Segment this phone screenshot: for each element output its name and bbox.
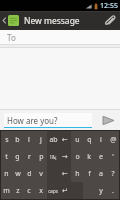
button[interactable]: n (1, 165, 12, 182)
staticText: ← (62, 136, 68, 144)
staticText: ↵ (62, 187, 68, 195)
button[interactable]: Send (96, 110, 120, 130)
button[interactable]: h (71, 165, 83, 182)
staticText: → (62, 153, 68, 161)
button[interactable]: To (0, 30, 120, 44)
button[interactable]: a (95, 165, 107, 182)
button[interactable]: . (107, 182, 119, 199)
button[interactable]: r (23, 148, 35, 165)
staticText: h (75, 169, 80, 179)
button[interactable]: w (12, 165, 23, 182)
staticText: ← (62, 170, 68, 178)
staticText: caps (48, 188, 58, 194)
button[interactable]: ↵ (59, 182, 71, 199)
staticText: To (7, 32, 16, 43)
staticText: d (27, 169, 32, 179)
staticText: @ (110, 135, 117, 145)
button[interactable]: x (35, 182, 47, 199)
staticText: ' (112, 152, 114, 162)
button[interactable]: 1&¡ (47, 148, 59, 165)
staticText: . (112, 186, 114, 196)
button[interactable]: d (23, 165, 35, 182)
button[interactable]: y (95, 182, 107, 199)
button[interactable]: q (83, 131, 95, 148)
staticText: l (28, 135, 30, 145)
button[interactable]: g (12, 148, 23, 165)
staticText: y (99, 186, 103, 196)
staticText: k (87, 152, 91, 162)
staticText: t (5, 152, 8, 162)
button[interactable]: caps (47, 182, 59, 199)
staticText: How are you? (7, 115, 58, 126)
button[interactable]: ← (59, 131, 71, 148)
staticText: q (87, 135, 92, 145)
button[interactable]: m (1, 182, 12, 199)
button[interactable]: Navigate up (0, 11, 21, 30)
staticText: g (15, 152, 20, 162)
button[interactable]: ← (59, 165, 71, 182)
button[interactable]: t (1, 148, 12, 165)
staticText: p (39, 152, 44, 162)
button[interactable]: ab (47, 131, 59, 148)
button[interactable]: e (95, 148, 107, 165)
staticText: z (16, 186, 20, 196)
button[interactable]: v (35, 165, 47, 182)
staticText: ab (49, 135, 58, 145)
button[interactable]: i (95, 131, 107, 148)
button[interactable]: s (1, 131, 12, 148)
staticText: i (100, 135, 102, 145)
staticText: s (5, 135, 9, 145)
button[interactable]: u (71, 131, 83, 148)
staticText: x (39, 186, 43, 196)
button[interactable]: l (23, 131, 35, 148)
button[interactable]: f (83, 165, 95, 182)
staticText: m (3, 186, 10, 196)
staticText: 12:55 (100, 1, 118, 11)
staticText: ? (111, 169, 115, 179)
staticText: o (75, 152, 80, 162)
button[interactable]: How are you? (4, 113, 92, 128)
button[interactable]: @ (107, 131, 119, 148)
staticText: New message (24, 15, 80, 27)
button[interactable]: c (23, 182, 35, 199)
button[interactable]: k (83, 148, 95, 165)
staticText: v (39, 169, 43, 179)
staticText: 1&¡ (49, 154, 57, 160)
staticText: a (99, 169, 103, 179)
staticText: b (15, 135, 20, 145)
button[interactable]: j (35, 131, 47, 148)
button[interactable]: b (12, 131, 23, 148)
staticText: j (40, 135, 42, 145)
staticText: u (75, 135, 80, 145)
button[interactable]: ' (107, 148, 119, 165)
button[interactable]: o (71, 148, 83, 165)
button[interactable]: → (59, 148, 71, 165)
button[interactable]: Attach (100, 11, 120, 30)
button[interactable]: ? (107, 165, 119, 182)
button[interactable]: p (35, 148, 47, 165)
staticText: w (15, 169, 21, 179)
button[interactable]: z (12, 182, 23, 199)
staticText: n (4, 169, 9, 179)
staticText: e (99, 152, 103, 162)
staticText: c (27, 186, 31, 196)
staticText: r (28, 152, 31, 162)
staticText: f (88, 169, 91, 179)
